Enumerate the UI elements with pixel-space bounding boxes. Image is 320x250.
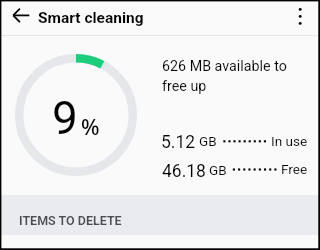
button[interactable]: 46.18 [157,156,313,182]
staticText: 5.12 [161,132,196,153]
staticText: GB [199,133,217,149]
staticText: ITEMS TO DELETE [19,213,122,228]
staticText: GB [209,162,227,178]
staticText: 46.18 [162,161,206,182]
button[interactable]: 5.12 [156,127,312,153]
staticText: 626 MB available to free up [162,58,287,94]
staticText: In use [271,133,308,149]
button[interactable]: More options [288,0,315,27]
button[interactable]: Back [5,1,32,28]
staticText: 9 [52,91,78,145]
button[interactable]: ITEMS TO DELETE [0,195,320,235]
staticText: Free [281,161,308,177]
staticText: % [81,112,100,142]
staticText: Smart cleaning [38,9,144,27]
